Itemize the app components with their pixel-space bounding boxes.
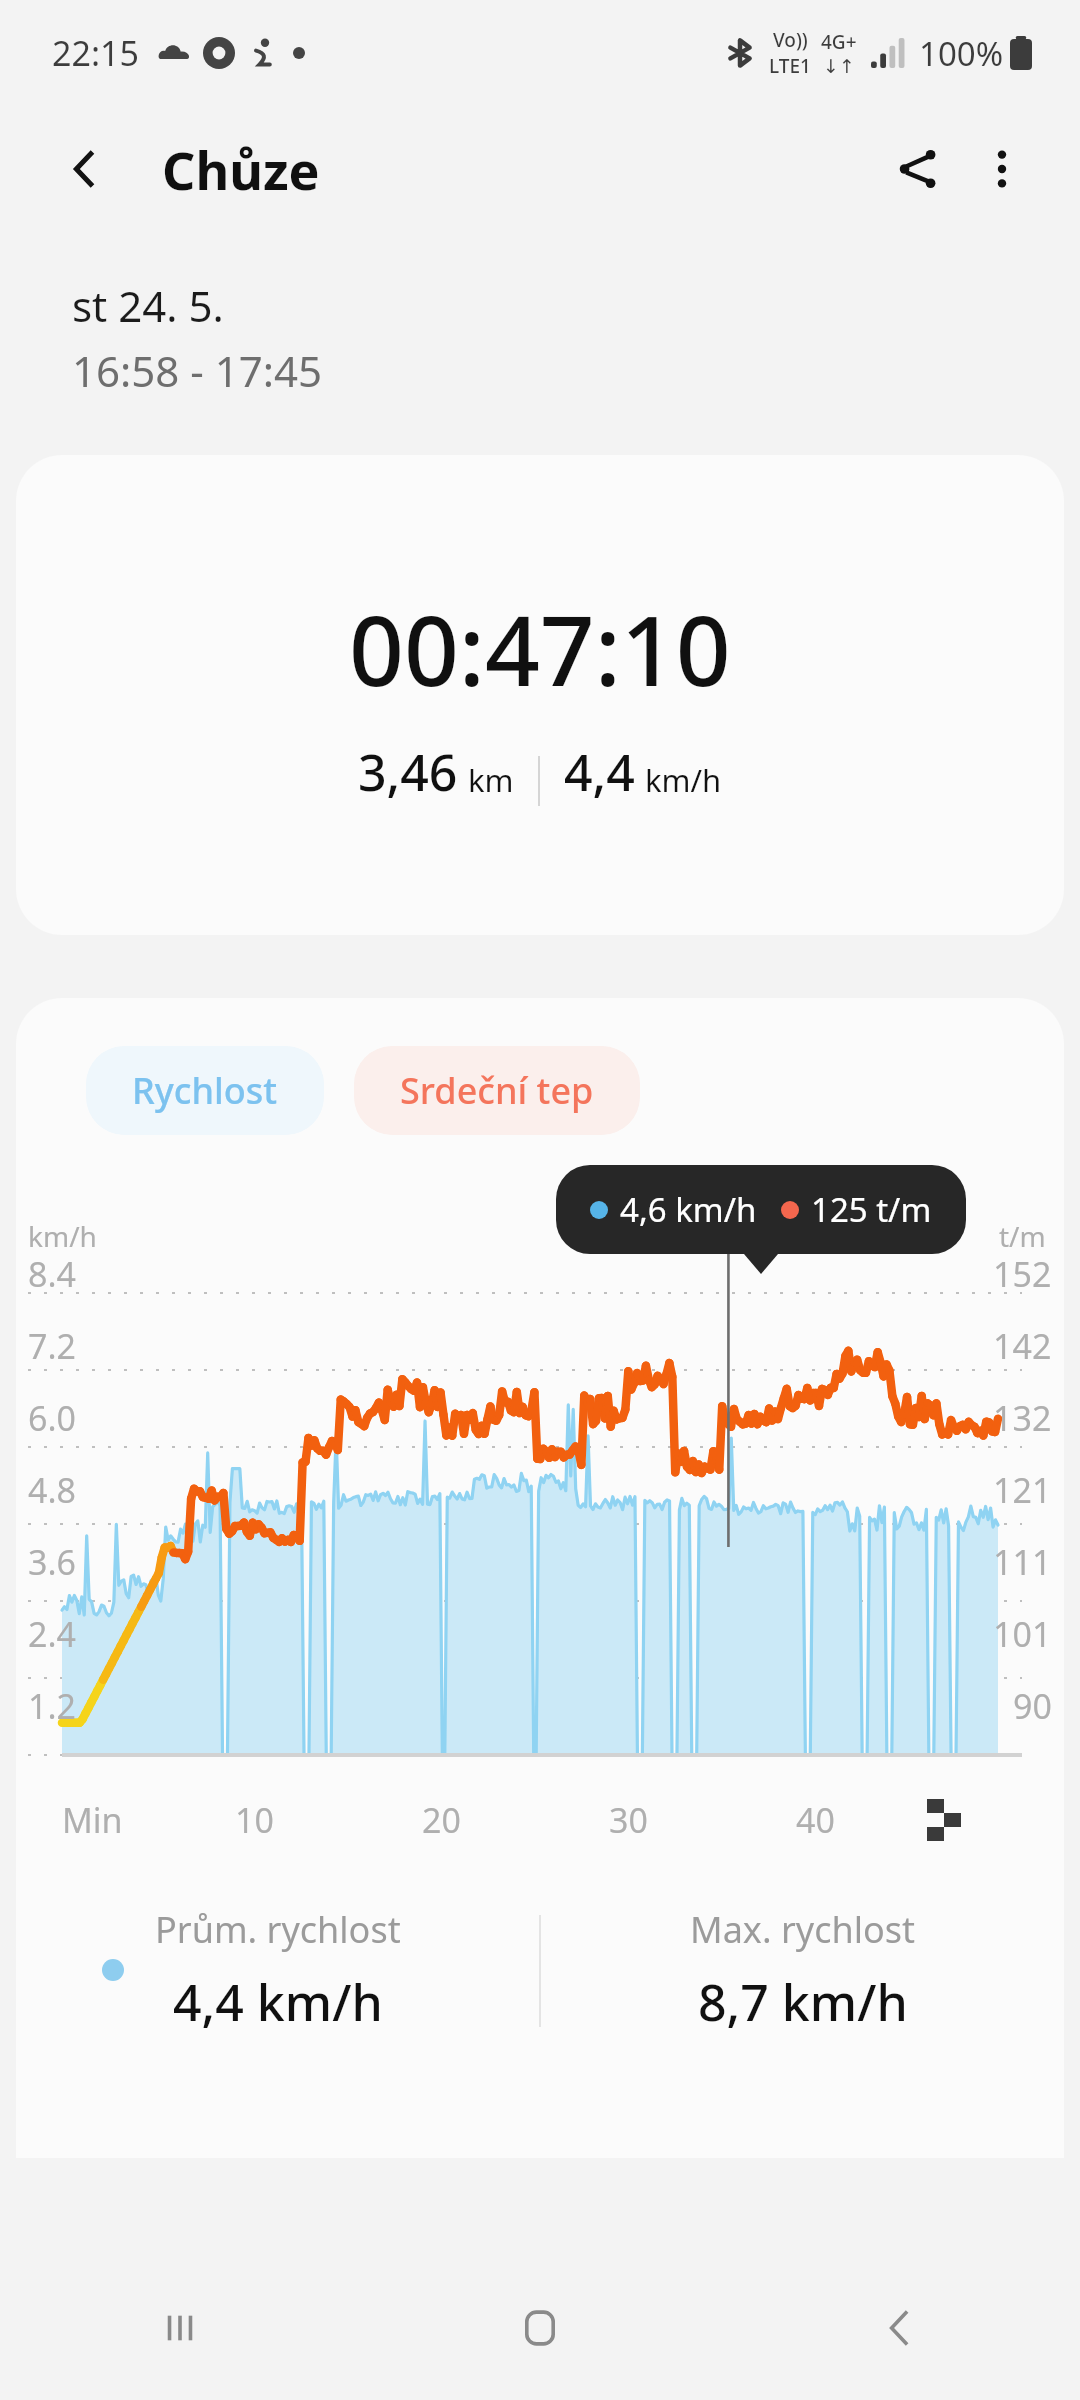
staticText: 121 <box>993 1467 1052 1513</box>
staticText: 16:58 - 17:45 <box>72 342 323 399</box>
staticText: 4.8 <box>28 1467 77 1513</box>
staticText: ↓↑ <box>823 55 855 77</box>
staticText: 22:15 <box>52 30 139 76</box>
staticText: 6.0 <box>28 1395 77 1441</box>
staticText: 20 <box>422 1797 461 1843</box>
staticText: 4,6 km/h <box>620 1187 757 1232</box>
staticText: Srdeční tep <box>400 1066 594 1115</box>
staticText: 152 <box>993 1251 1052 1297</box>
staticText: 132 <box>993 1395 1052 1441</box>
button[interactable]: Home <box>360 2255 720 2400</box>
staticText: 8.4 <box>28 1251 77 1297</box>
button[interactable]: Recents <box>0 2255 360 2400</box>
staticText: Rychlost <box>132 1066 278 1115</box>
staticText: 40 <box>796 1797 835 1843</box>
staticText: st 24. 5. <box>72 277 224 334</box>
staticText: 125 t/m <box>811 1187 932 1232</box>
button[interactable]: 00:47:10 <box>16 455 1064 935</box>
staticText: km/h <box>645 759 722 801</box>
button[interactable]: Back <box>50 134 120 204</box>
staticText: 00:47:10 <box>349 583 731 714</box>
staticText: km <box>468 759 514 801</box>
staticText: 1.2 <box>28 1683 77 1729</box>
button[interactable]: Back <box>720 2255 1080 2400</box>
staticText: LTE1 <box>769 53 811 79</box>
staticText: 30 <box>609 1797 648 1843</box>
staticText: Prům. rychlost <box>155 1905 401 1954</box>
staticText: Chůze <box>162 134 320 205</box>
staticText: Max. rychlost <box>690 1905 915 1954</box>
staticText: 2.4 <box>28 1611 77 1657</box>
staticText: 7.2 <box>28 1323 77 1369</box>
staticText: 90 <box>1013 1683 1052 1729</box>
staticText: 4G+ <box>821 29 857 55</box>
staticText: 3.6 <box>28 1539 77 1585</box>
staticText: 8,7 km/h <box>698 1968 908 2036</box>
staticText: 101 <box>993 1611 1052 1657</box>
staticText: 4,4 km/h <box>173 1968 383 2036</box>
staticText: km/h <box>28 1217 97 1255</box>
button[interactable]: Share <box>876 127 960 211</box>
button[interactable]: More options <box>960 127 1044 211</box>
staticText: t/m <box>999 1217 1046 1255</box>
staticText: Vo)) <box>773 27 808 53</box>
staticText: Min <box>62 1797 123 1843</box>
staticText: 111 <box>993 1539 1052 1585</box>
staticText: 100% <box>919 31 1004 76</box>
button[interactable]: Rychlost <box>86 1046 324 1135</box>
staticText: 3,46 <box>358 738 458 806</box>
button[interactable]: Srdeční tep <box>354 1046 640 1135</box>
staticText: 4,4 <box>564 738 635 806</box>
staticText: 10 <box>235 1797 274 1843</box>
staticText: 142 <box>993 1323 1052 1369</box>
